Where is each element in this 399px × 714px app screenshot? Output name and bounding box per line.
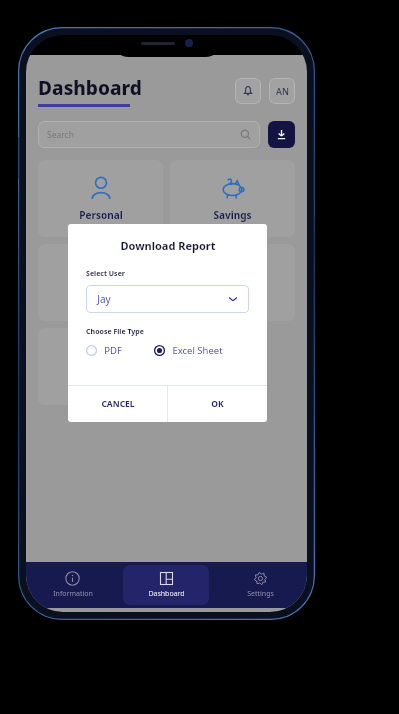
staticText: AN [276,85,289,97]
staticText: Select User [86,269,125,279]
button[interactable]: OK [168,386,267,422]
button[interactable]: Jay [86,285,249,313]
button[interactable]: AN [269,78,295,104]
staticText: Choose File Type [86,327,144,337]
staticText: Jay [97,292,111,306]
staticText: Settings [247,589,274,599]
button[interactable]: Social [38,328,163,405]
button[interactable]: Personal [38,160,163,237]
staticText: Information [53,589,93,599]
button[interactable]: Information [30,565,115,605]
button[interactable]: Notifications [235,78,261,104]
button[interactable]: CANCEL [68,386,167,422]
staticText: Dashboard [148,589,185,599]
button[interactable]: Travel [170,244,295,321]
staticText: Dashboard [38,75,142,101]
staticText: Savings [213,208,252,222]
button[interactable]: Download [268,121,295,148]
staticText: Search [47,129,74,141]
staticText: Health [84,292,118,306]
staticText: Download Report [120,238,216,253]
button[interactable]: Health [38,244,163,321]
button[interactable]: PDF [86,344,154,357]
staticText: Excel Sheet [172,344,223,357]
button[interactable]: Settings [217,565,303,605]
staticText: CANCEL [101,398,135,410]
staticText: Personal [79,208,123,222]
staticText: OK [211,398,224,410]
staticText: PDF [104,344,122,357]
button[interactable]: Search [38,121,260,148]
button[interactable]: Excel Sheet [154,344,249,357]
button[interactable]: Savings [170,160,295,237]
staticText: Travel [217,292,248,306]
staticText: Social [86,376,115,390]
button[interactable]: Dashboard [123,565,209,605]
